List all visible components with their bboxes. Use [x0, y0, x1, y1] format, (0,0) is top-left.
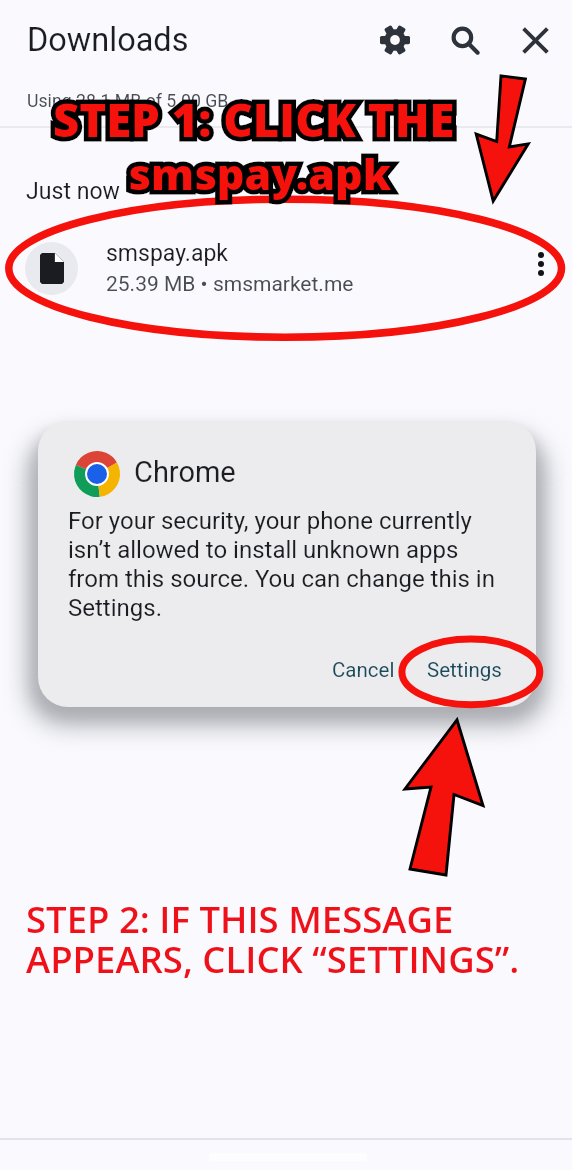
staticText: smspay.apk — [128, 144, 392, 203]
staticText: STEP 2: IF THIS MESSAGE APPEARS, CLICK “… — [26, 894, 520, 984]
button[interactable]: Settings — [371, 16, 419, 64]
button[interactable]: Settings — [411, 649, 518, 691]
button[interactable]: Downloads — [27, 21, 189, 59]
staticText: Settings — [427, 658, 502, 682]
staticText: For your security, your phone currently … — [68, 507, 496, 622]
staticText: STEP 1: CLICK THE — [53, 88, 455, 150]
staticText: Cancel — [332, 658, 395, 682]
staticText: smspay.apk — [106, 240, 228, 267]
staticText: Chrome — [134, 455, 236, 489]
button[interactable]: smspay.apk — [0, 231, 572, 305]
staticText: smspay.apk — [128, 144, 392, 203]
button[interactable]: More options — [521, 244, 561, 284]
staticText: STEP 1: CLICK THE — [53, 88, 455, 150]
button[interactable]: Search — [441, 16, 489, 64]
staticText: 25.39 MB • smsmarket.me — [106, 272, 354, 297]
button[interactable]: Cancel — [316, 649, 411, 691]
button[interactable]: Close — [511, 16, 559, 64]
staticText: Just now — [26, 178, 120, 205]
staticText: Using 28.1 MB of 5.00 GB — [27, 91, 229, 112]
